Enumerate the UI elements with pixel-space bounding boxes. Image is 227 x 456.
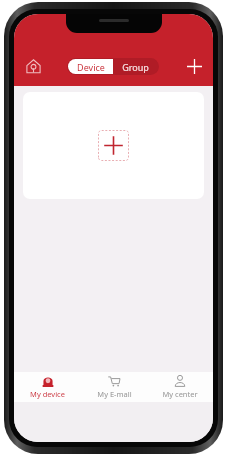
staticText: Device — [77, 61, 105, 73]
button[interactable]: Add a device — [23, 92, 204, 199]
button[interactable]: My center — [147, 372, 213, 402]
staticText: Group — [122, 61, 149, 73]
button[interactable]: Device — [68, 59, 113, 74]
staticText: My device — [30, 389, 65, 399]
staticText: My E-mall — [97, 389, 132, 399]
button[interactable]: Group — [113, 59, 158, 74]
button[interactable]: My E-mall — [81, 372, 147, 402]
button[interactable]: Add device — [182, 54, 206, 78]
button[interactable]: Home — [21, 54, 45, 78]
button[interactable]: My device — [14, 372, 81, 402]
staticText: My center — [162, 389, 198, 399]
